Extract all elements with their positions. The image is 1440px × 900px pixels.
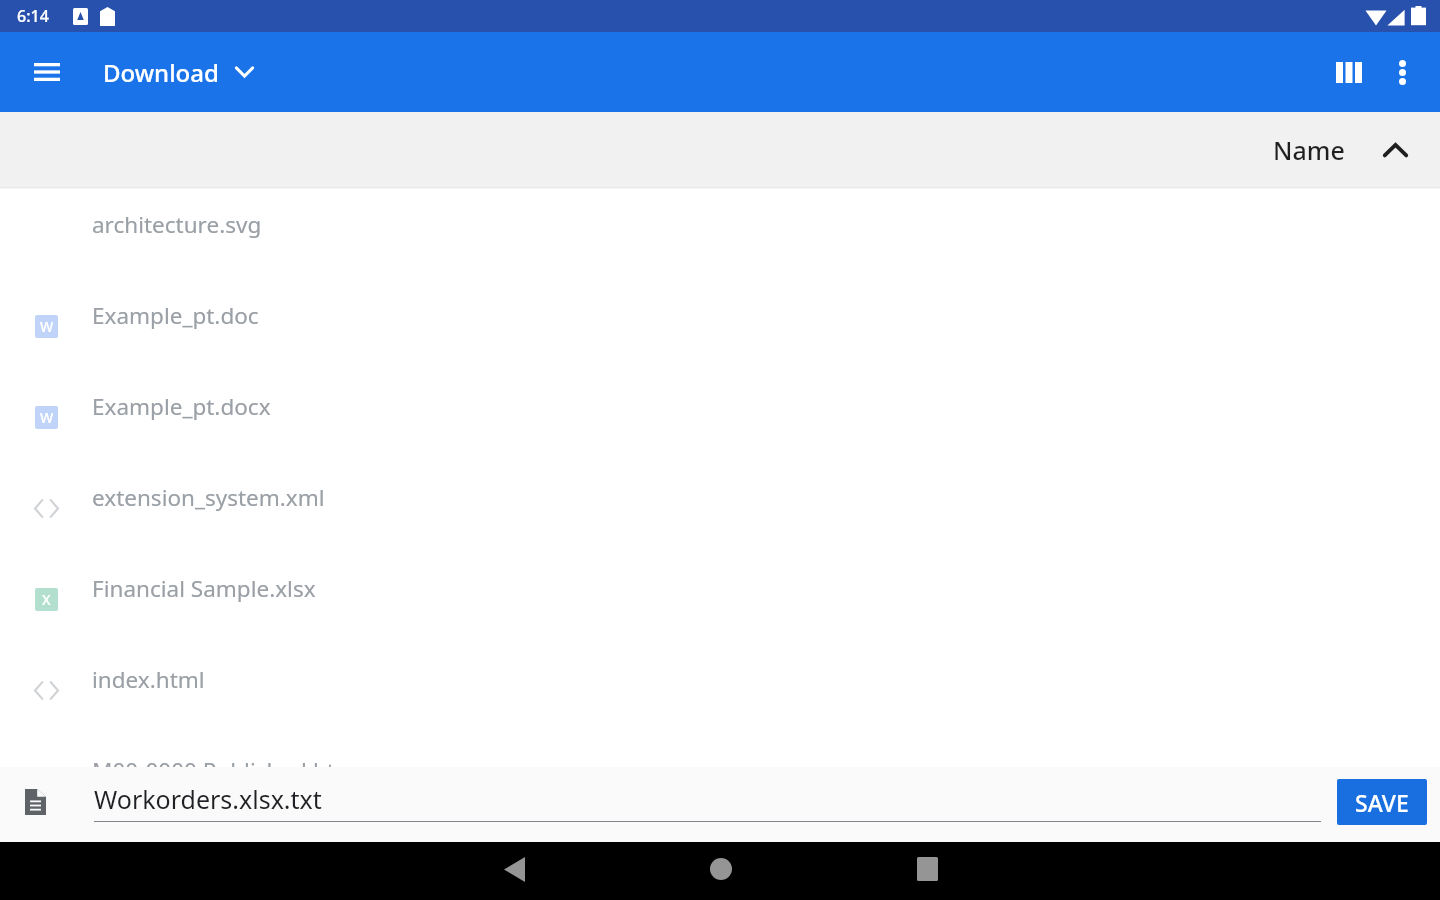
staticText: X <box>42 590 51 609</box>
staticText: index.html <box>92 664 205 695</box>
staticText: M00-0000 Published.ht <box>92 755 335 767</box>
staticText: Name <box>1273 133 1345 167</box>
staticText: architecture.svg <box>92 209 262 240</box>
button[interactable]: architecture.svg <box>0 190 1440 281</box>
button[interactable]: Recents <box>871 842 983 900</box>
staticText: Financial Sample.xlsx <box>92 573 316 604</box>
staticText: Example_pt.docx <box>92 391 271 422</box>
button[interactable]: index.html <box>0 645 1440 736</box>
staticText: 6:14 <box>17 5 49 27</box>
button[interactable]: Grid view <box>1315 39 1373 105</box>
button[interactable]: Home <box>665 842 777 900</box>
staticText: W <box>40 408 54 427</box>
staticText: W <box>40 317 54 336</box>
button[interactable]: extension_system.xml <box>0 463 1440 554</box>
button[interactable]: X <box>0 554 1440 645</box>
button[interactable]: W <box>0 372 1440 463</box>
button[interactable]: Back <box>458 842 570 900</box>
staticText: Workorders.xlsx.txt <box>94 782 322 816</box>
button[interactable]: More options <box>1373 39 1439 105</box>
staticText: Example_pt.doc <box>92 300 259 331</box>
button[interactable]: Name <box>1263 120 1418 180</box>
button[interactable]: P <box>0 736 1440 767</box>
staticText: extension_system.xml <box>92 482 325 513</box>
staticText: Download <box>103 56 219 89</box>
button[interactable]: W <box>0 281 1440 372</box>
button[interactable]: Download <box>103 39 262 105</box>
button[interactable]: SAVE <box>1337 779 1427 825</box>
staticText: SAVE <box>1355 787 1409 818</box>
button[interactable]: Show roots <box>14 39 80 105</box>
